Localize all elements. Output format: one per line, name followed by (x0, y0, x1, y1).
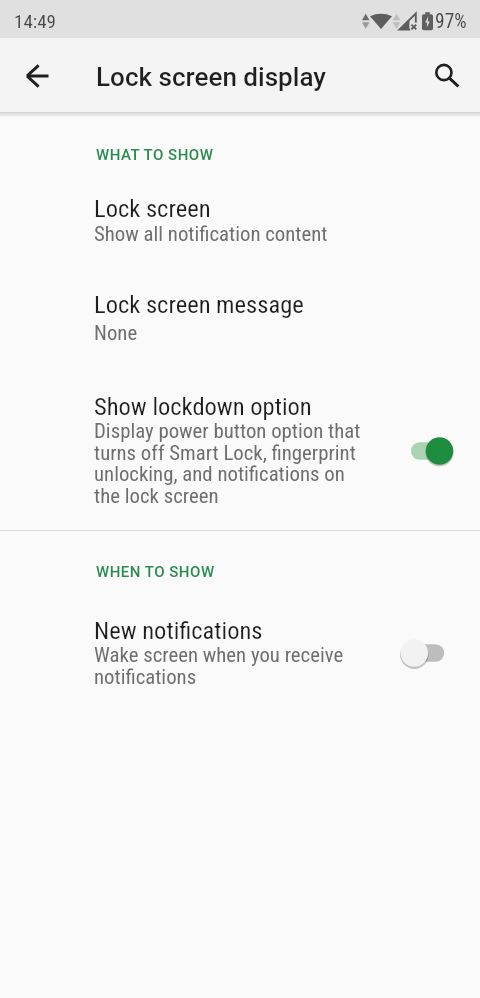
staticText: Show lockdown option (94, 392, 312, 421)
staticText: New notifications (94, 616, 263, 645)
staticText: None (94, 321, 138, 345)
button[interactable] (411, 436, 457, 466)
staticText: turns off Smart Lock, fingerprint (94, 441, 356, 465)
staticText: the lock screen (94, 484, 219, 508)
staticText: WHAT TO SHOW (96, 146, 214, 164)
staticText: unlocking, and notifications on (94, 462, 345, 486)
staticText: 97% (435, 10, 467, 33)
staticText: Display power button option that (94, 419, 361, 443)
button[interactable]: Lock screen (0, 183, 480, 262)
staticText: WHEN TO SHOW (96, 563, 215, 581)
staticText: Lock screen display (96, 62, 326, 92)
button[interactable] (416, 47, 472, 103)
button[interactable] (10, 47, 66, 103)
button[interactable]: Lock screen message (0, 279, 480, 358)
staticText: Show all notification content (94, 222, 328, 246)
button[interactable] (400, 638, 446, 668)
staticText: notifications (94, 665, 197, 689)
button[interactable]: New notifications (0, 605, 480, 700)
button[interactable]: Show lockdown option (0, 381, 480, 521)
staticText: Lock screen (94, 194, 211, 223)
staticText: Lock screen message (94, 290, 304, 319)
staticText: Wake screen when you receive (94, 643, 344, 667)
staticText: 14:49 (14, 10, 56, 32)
